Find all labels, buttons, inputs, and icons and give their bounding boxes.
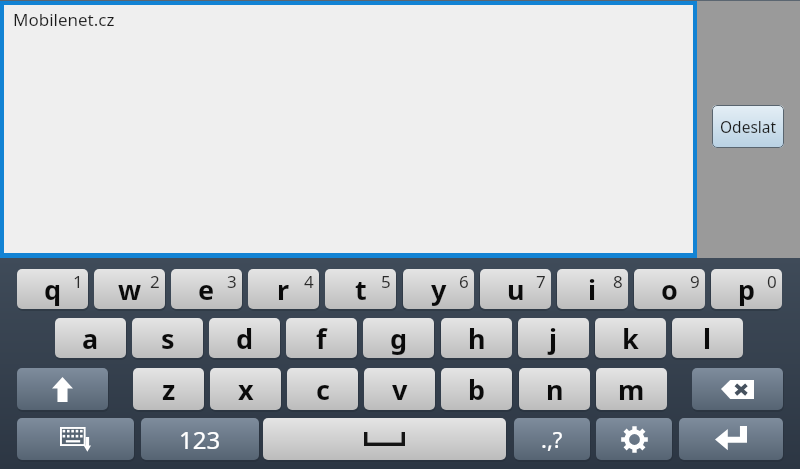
button[interactable]: t [325, 269, 396, 309]
button[interactable]: q [17, 269, 88, 309]
button[interactable]: g [363, 318, 434, 358]
button[interactable]: Settings [596, 418, 672, 460]
staticText: m [618, 371, 645, 408]
staticText: x [238, 371, 254, 408]
button[interactable]: Numbers and symbols [141, 418, 259, 460]
button[interactable]: Hide keyboard [17, 418, 134, 460]
button[interactable]: Shift [17, 368, 108, 410]
button[interactable]: j [518, 318, 589, 358]
button[interactable]: s [132, 318, 203, 358]
staticText: c [316, 371, 330, 408]
button[interactable]: Punctuation [514, 418, 590, 460]
staticText: h [468, 320, 486, 357]
button[interactable]: i [557, 269, 628, 309]
staticText: 8 [613, 270, 623, 293]
button[interactable]: r [248, 269, 319, 309]
button[interactable]: l [672, 318, 743, 358]
button[interactable]: z [133, 368, 204, 410]
button[interactable]: k [595, 318, 666, 358]
button[interactable]: b [441, 368, 512, 410]
button[interactable]: f [286, 318, 357, 358]
button[interactable]: h [441, 318, 512, 358]
staticText: Mobilenet.cz [13, 8, 115, 31]
button[interactable]: o [634, 269, 705, 309]
staticText: w [118, 271, 142, 308]
staticText: 4 [304, 270, 314, 293]
staticText: r [277, 271, 290, 308]
button[interactable]: Backspace [692, 368, 783, 410]
button[interactable]: d [209, 318, 280, 358]
staticText: g [390, 320, 408, 357]
staticText: d [236, 320, 254, 357]
staticText: 0 [767, 270, 777, 293]
staticText: 123 [179, 423, 221, 456]
staticText: Odeslat [720, 116, 777, 137]
staticText: z [162, 371, 176, 408]
button[interactable]: Odeslat [712, 105, 784, 148]
staticText: a [82, 320, 99, 357]
staticText: 7 [536, 270, 546, 293]
button[interactable]: x [210, 368, 281, 410]
staticText: o [661, 271, 678, 308]
button[interactable]: p [711, 269, 782, 309]
button[interactable]: n [519, 368, 590, 410]
staticText: p [738, 271, 756, 308]
staticText: l [703, 320, 712, 357]
button[interactable]: v [364, 368, 435, 410]
staticText: e [198, 271, 215, 308]
staticText: t [355, 271, 367, 308]
staticText: 1 [73, 270, 83, 293]
staticText: j [549, 320, 558, 357]
staticText: i [588, 271, 597, 308]
button[interactable]: e [171, 269, 242, 309]
button[interactable]: Space [263, 418, 506, 460]
button[interactable]: Mobilenet.cz [4, 5, 693, 253]
staticText: 3 [227, 270, 237, 293]
button[interactable]: c [287, 368, 358, 410]
staticText: 2 [150, 270, 160, 293]
button[interactable]: u [480, 269, 551, 309]
button[interactable]: a [55, 318, 126, 358]
button[interactable]: m [596, 368, 667, 410]
button[interactable]: w [94, 269, 165, 309]
staticText: u [507, 271, 525, 308]
staticText: v [392, 371, 408, 408]
staticText: b [468, 371, 486, 408]
button[interactable]: y [403, 269, 474, 309]
staticText: q [44, 271, 62, 308]
button[interactable]: Enter [679, 418, 783, 460]
staticText: .,? [541, 424, 563, 454]
staticText: s [161, 320, 175, 357]
staticText: 6 [459, 270, 469, 293]
staticText: n [546, 371, 564, 408]
staticText: y [431, 271, 447, 308]
staticText: k [622, 320, 639, 357]
staticText: 9 [690, 270, 700, 293]
staticText: f [316, 320, 327, 357]
staticText: 5 [381, 270, 391, 293]
